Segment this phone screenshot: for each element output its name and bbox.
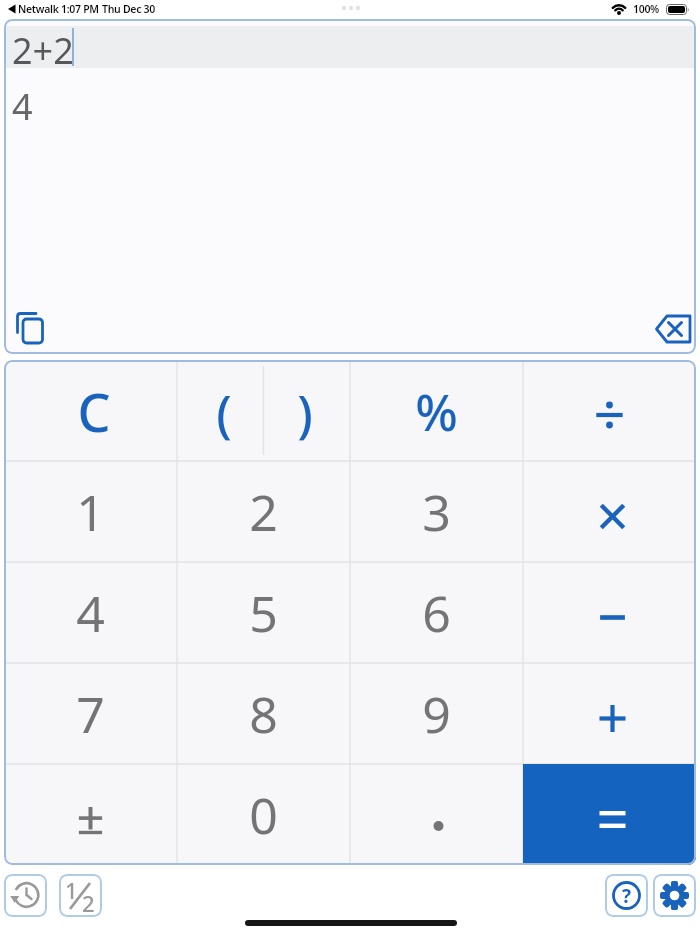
staticText: ( bbox=[216, 379, 232, 447]
staticText: C bbox=[77, 376, 111, 447]
staticText: 1 bbox=[65, 875, 78, 905]
button[interactable] bbox=[350, 764, 523, 865]
button[interactable] bbox=[523, 663, 696, 764]
button[interactable] bbox=[4, 874, 47, 917]
button[interactable] bbox=[14, 312, 54, 352]
staticText: 2 bbox=[249, 478, 278, 546]
button[interactable]: ( bbox=[181, 362, 267, 463]
staticText: 0 bbox=[249, 781, 278, 849]
button[interactable]: 5 bbox=[177, 562, 350, 663]
button[interactable] bbox=[4, 764, 177, 865]
staticText: 2+2 bbox=[12, 26, 74, 68]
staticText: 6 bbox=[422, 579, 451, 647]
button[interactable]: 3 bbox=[350, 461, 523, 562]
button[interactable]: 9 bbox=[350, 663, 523, 764]
button[interactable]: 6 bbox=[350, 562, 523, 663]
button[interactable] bbox=[523, 360, 696, 461]
staticText: Netwalk bbox=[18, 2, 59, 16]
staticText: 8 bbox=[249, 680, 278, 748]
staticText: 1 bbox=[76, 478, 105, 546]
button[interactable] bbox=[523, 764, 696, 865]
button[interactable]: ) bbox=[262, 362, 348, 463]
button[interactable] bbox=[653, 874, 696, 917]
staticText: 4 bbox=[76, 579, 105, 647]
button[interactable]: % bbox=[350, 361, 523, 462]
staticText: 7 bbox=[76, 680, 105, 748]
staticText: % bbox=[415, 378, 458, 446]
button[interactable] bbox=[523, 562, 696, 663]
staticText: 2 bbox=[82, 888, 95, 917]
button[interactable]: 7 bbox=[4, 663, 177, 764]
button[interactable]: 1 bbox=[59, 874, 102, 917]
button[interactable]: 8 bbox=[177, 663, 350, 764]
staticText: ? bbox=[622, 883, 632, 909]
staticText: 100% bbox=[633, 2, 660, 16]
staticText: ) bbox=[297, 379, 313, 447]
button[interactable]: 4 bbox=[4, 562, 177, 663]
staticText: 5 bbox=[249, 579, 278, 647]
staticText: 3 bbox=[422, 478, 451, 546]
button[interactable] bbox=[523, 461, 696, 562]
button[interactable]: 2 bbox=[177, 461, 350, 562]
staticText: 1:07 PM bbox=[61, 2, 99, 16]
staticText: 4 bbox=[12, 82, 33, 124]
button[interactable] bbox=[648, 307, 696, 347]
button[interactable]: 1 bbox=[4, 461, 177, 562]
button[interactable]: C bbox=[7, 361, 180, 462]
staticText: 9 bbox=[422, 680, 451, 748]
button[interactable]: ? bbox=[605, 874, 648, 917]
staticText: Thu Dec 30 bbox=[102, 2, 155, 16]
button[interactable]: 0 bbox=[177, 764, 350, 865]
